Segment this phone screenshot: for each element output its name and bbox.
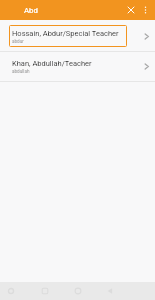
staticText: Hossain, Abdur/Special Teacher	[12, 29, 119, 38]
button[interactable]: More options	[136, 1, 154, 19]
staticText: abdullah	[12, 69, 30, 74]
staticText: abdur	[12, 39, 24, 44]
staticText: Abd	[24, 6, 38, 15]
button[interactable]: Clear search	[122, 1, 140, 19]
staticText: Khan, Abdullah/Teacher	[12, 59, 92, 68]
button[interactable]: Hossain, Abdur/Special Teacher	[0, 22, 155, 52]
button[interactable]: Khan, Abdullah/Teacher	[0, 52, 155, 82]
